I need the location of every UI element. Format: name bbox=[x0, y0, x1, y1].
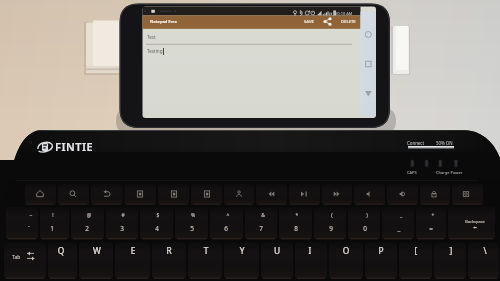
button[interactable]: Test bbox=[143, 29, 361, 44]
staticText: 8 bbox=[290, 224, 302, 233]
button[interactable]: Share bbox=[318, 15, 337, 28]
staticText: DELETE bbox=[341, 19, 356, 25]
staticText: I bbox=[302, 245, 318, 256]
staticText: ] bbox=[443, 245, 459, 256]
staticText: 10:10 AM bbox=[335, 11, 353, 16]
staticText: 50% ON bbox=[436, 140, 453, 146]
staticText: Testing bbox=[147, 48, 163, 54]
staticText: # bbox=[117, 212, 129, 219]
staticText: 6 bbox=[220, 224, 232, 233]
staticText: + bbox=[427, 212, 439, 219]
staticText: T bbox=[198, 245, 214, 256]
staticText: R bbox=[161, 245, 177, 256]
staticText: 3 bbox=[116, 224, 128, 233]
staticText: Connect bbox=[407, 140, 425, 146]
staticText: O bbox=[338, 245, 354, 256]
staticText: ~ bbox=[25, 212, 37, 219]
button[interactable]: Testing bbox=[143, 46, 361, 118]
staticText: 4 bbox=[151, 224, 163, 233]
staticText: U bbox=[269, 245, 285, 256]
staticText: 1 bbox=[46, 224, 58, 233]
staticText: ⬅ bbox=[458, 225, 492, 230]
staticText: Q bbox=[53, 245, 69, 256]
staticText: [ bbox=[408, 245, 424, 256]
staticText: \ bbox=[477, 245, 493, 256]
button[interactable]: SAVE bbox=[300, 15, 318, 28]
staticText: 2 bbox=[81, 224, 93, 233]
staticText: Y bbox=[234, 245, 250, 256]
staticText: ` bbox=[23, 224, 35, 233]
staticText: * bbox=[291, 212, 303, 219]
staticText: _ bbox=[395, 212, 407, 219]
staticText: W bbox=[89, 245, 105, 256]
staticText: 9 bbox=[325, 224, 337, 233]
staticText: Charge Power bbox=[436, 170, 463, 175]
staticText: CAPS bbox=[407, 170, 417, 175]
staticText: FINTIE bbox=[55, 139, 94, 154]
staticText: 7 bbox=[255, 224, 267, 233]
staticText: Test bbox=[147, 34, 156, 40]
staticText: SAVE bbox=[304, 19, 314, 25]
staticText: ! bbox=[47, 212, 59, 219]
staticText: = bbox=[425, 224, 437, 233]
staticText: _ bbox=[393, 224, 405, 233]
staticText: & bbox=[257, 212, 269, 219]
staticText: Backspace bbox=[458, 219, 492, 224]
staticText: 5 bbox=[186, 224, 198, 233]
staticText: $ bbox=[152, 212, 164, 219]
staticText: % bbox=[187, 212, 199, 219]
staticText: ( bbox=[326, 212, 338, 219]
staticText: ^ bbox=[222, 212, 234, 219]
staticText: Tab bbox=[12, 254, 21, 261]
staticText: ) bbox=[361, 212, 373, 219]
button[interactable]: DELETE bbox=[337, 15, 359, 28]
staticText: E bbox=[125, 245, 141, 256]
staticText: 0 bbox=[359, 224, 371, 233]
staticText: P bbox=[373, 245, 389, 256]
staticText: @ bbox=[83, 212, 95, 219]
staticText: Notepad Free bbox=[150, 19, 178, 24]
